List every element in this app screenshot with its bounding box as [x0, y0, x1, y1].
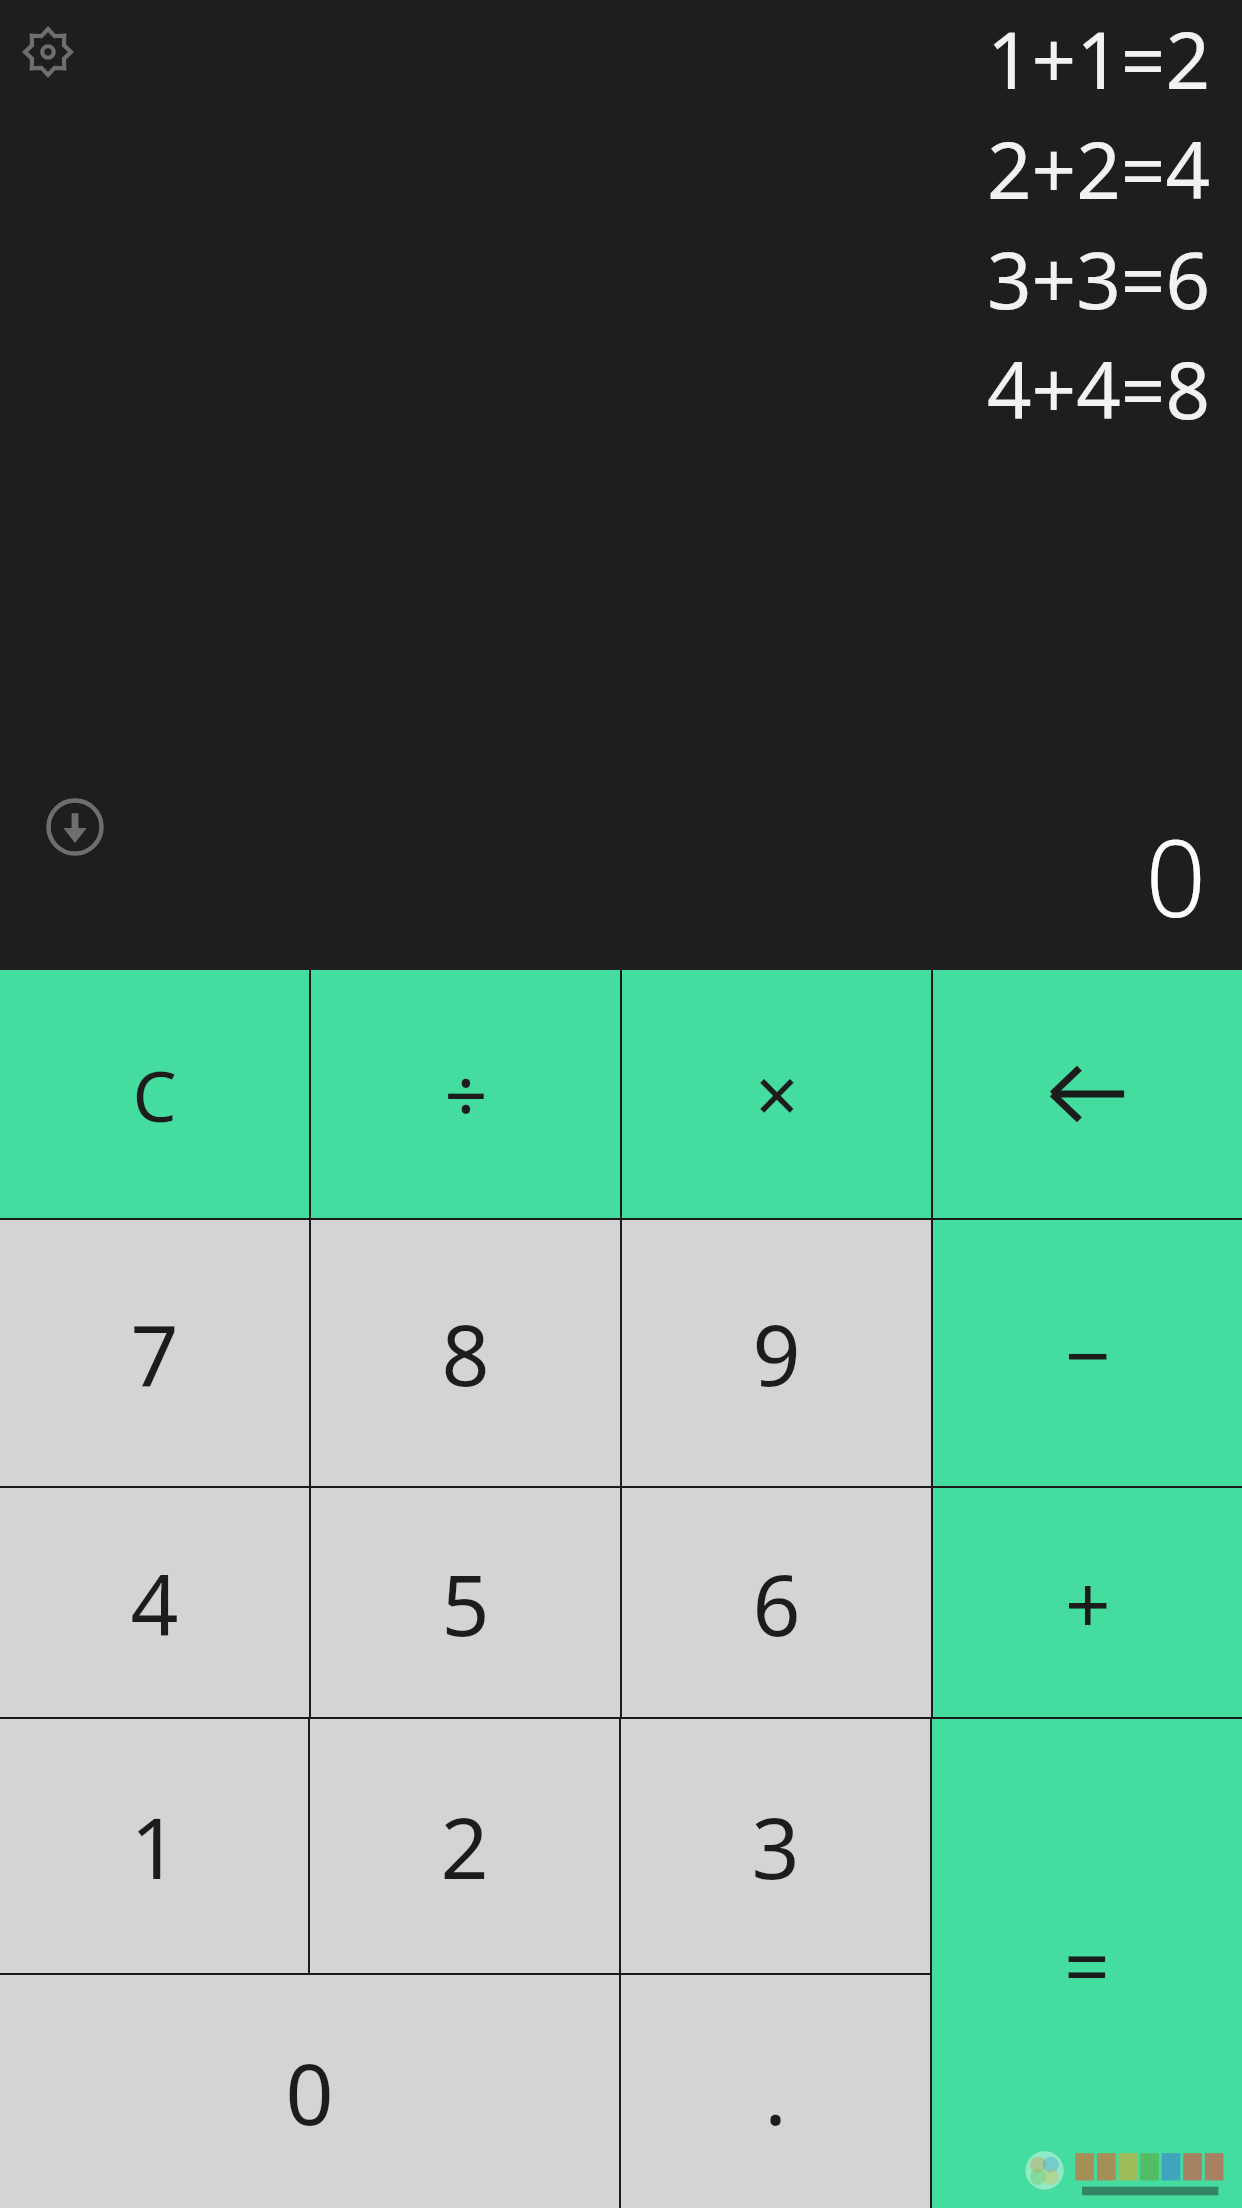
button[interactable]: Backspace: [933, 970, 1242, 1218]
staticText: 4: [130, 1546, 179, 1660]
button[interactable]: 2: [310, 1719, 619, 1973]
staticText: =: [1064, 1909, 1110, 2018]
button[interactable]: Save history: [40, 792, 110, 862]
staticText: 1: [130, 1789, 179, 1903]
button[interactable]: 1: [0, 1719, 308, 1973]
staticText: ×: [755, 1042, 799, 1146]
staticText: 3: [751, 1789, 800, 1903]
staticText: 3+3=6: [986, 226, 1210, 332]
staticText: 0: [1145, 804, 1206, 948]
staticText: 2+2=4: [986, 116, 1210, 222]
staticText: 5: [441, 1546, 490, 1660]
button[interactable]: 0: [0, 1975, 619, 2208]
staticText: 9: [752, 1296, 801, 1410]
button[interactable]: 5: [311, 1488, 620, 1717]
staticText: 1+1=2: [986, 6, 1210, 112]
staticText: 8: [441, 1296, 490, 1410]
staticText: 4+4=8: [986, 336, 1210, 442]
button[interactable]: .: [621, 1975, 930, 2208]
button[interactable]: Settings: [14, 18, 82, 86]
button[interactable]: −: [933, 1220, 1242, 1486]
staticText: 7: [130, 1296, 179, 1410]
staticText: .: [764, 2035, 787, 2149]
staticText: −: [1065, 1299, 1111, 1408]
button[interactable]: ×: [622, 970, 931, 1218]
staticText: C: [132, 1047, 177, 1142]
button[interactable]: C: [0, 970, 309, 1218]
button[interactable]: 4: [0, 1488, 309, 1717]
button[interactable]: 6: [622, 1488, 931, 1717]
staticText: 6: [752, 1546, 801, 1660]
staticText: ÷: [444, 1042, 488, 1146]
staticText: 2: [440, 1789, 489, 1903]
staticText: +: [1065, 1548, 1111, 1657]
button[interactable]: =: [932, 1719, 1242, 2208]
button[interactable]: 7: [0, 1220, 309, 1486]
button[interactable]: 9: [622, 1220, 931, 1486]
staticText: 0: [285, 2035, 334, 2149]
button[interactable]: ÷: [311, 970, 620, 1218]
button[interactable]: 3: [621, 1719, 930, 1973]
button[interactable]: 8: [311, 1220, 620, 1486]
button[interactable]: +: [933, 1488, 1242, 1717]
